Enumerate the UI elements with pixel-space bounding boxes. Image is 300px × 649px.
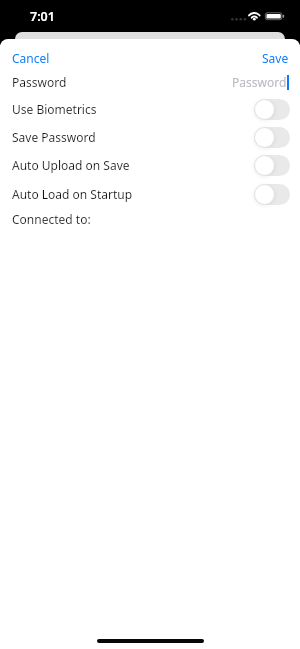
button[interactable]: Toggle setting xyxy=(254,184,290,205)
button[interactable]: Use Biometrics xyxy=(0,95,300,123)
button[interactable]: Toggle setting xyxy=(254,155,290,176)
button[interactable]: Save xyxy=(254,46,297,70)
staticText: Save Password xyxy=(12,129,96,145)
staticText: Password xyxy=(232,74,287,90)
staticText: Use Biometrics xyxy=(12,101,97,117)
staticText: Auto Load on Startup xyxy=(12,186,133,202)
staticText: Save xyxy=(262,50,289,66)
button[interactable]: Toggle setting xyxy=(254,127,290,148)
staticText: Password xyxy=(12,74,67,90)
button[interactable]: Password xyxy=(0,70,300,94)
staticText: Auto Upload on Save xyxy=(12,157,130,173)
button[interactable]: Save Password xyxy=(0,123,300,151)
button[interactable]: Cancel xyxy=(4,46,58,70)
button[interactable]: Toggle setting xyxy=(254,99,290,120)
button[interactable]: Auto Load on Startup xyxy=(0,180,300,208)
staticText: Cancel xyxy=(12,50,50,66)
button[interactable]: Auto Upload on Save xyxy=(0,151,300,179)
staticText: 7:01 xyxy=(30,8,55,25)
staticText: Connected to: xyxy=(12,211,91,227)
